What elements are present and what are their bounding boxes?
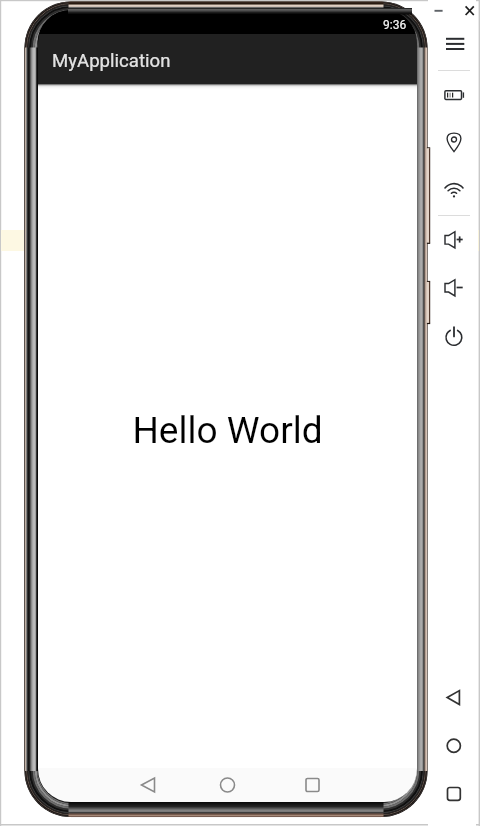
button[interactable]: Minimize (430, 3, 447, 19)
button[interactable]: Battery (441, 86, 468, 104)
button[interactable]: Volume down (443, 278, 465, 298)
staticText: 9:36 (383, 18, 407, 32)
button[interactable]: Volume up (443, 230, 465, 250)
button[interactable]: Back button (445, 688, 463, 708)
staticText: MyApplication (52, 50, 171, 72)
button[interactable]: Wi-Fi (443, 181, 465, 199)
button[interactable]: Location (445, 131, 463, 153)
button[interactable]: MyApplication (38, 34, 417, 84)
button[interactable]: Overview button (445, 784, 463, 804)
button[interactable]: Close (462, 2, 478, 20)
button[interactable]: Menu (443, 34, 466, 54)
button[interactable]: Home button (445, 736, 463, 756)
staticText: Hello World (132, 409, 323, 452)
button[interactable]: Power (445, 326, 464, 346)
